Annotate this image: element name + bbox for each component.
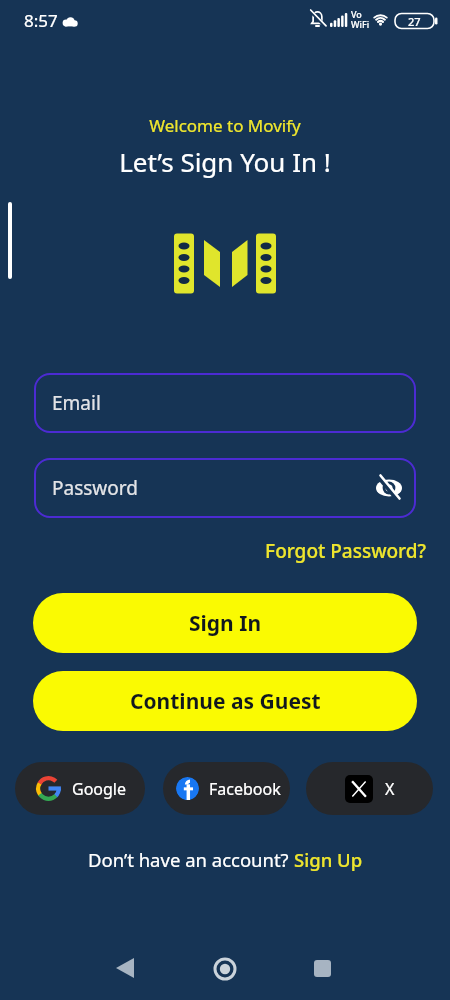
button[interactable]: Password <box>34 458 416 518</box>
button[interactable]: Sign In <box>33 593 417 653</box>
button[interactable]: Email <box>34 373 416 433</box>
button[interactable] <box>213 957 237 981</box>
button[interactable]: Google <box>15 762 145 815</box>
staticText: Password <box>52 475 138 501</box>
button[interactable]: Facebook <box>163 762 290 815</box>
button[interactable] <box>314 960 331 977</box>
staticText: Let’s Sign You In ! <box>0 144 450 179</box>
button[interactable]: Sign Up <box>294 847 363 872</box>
button[interactable] <box>116 958 134 978</box>
staticText: Welcome to Movify <box>0 114 450 137</box>
staticText: Continue as Guest <box>130 687 321 716</box>
button[interactable]: X <box>306 762 433 815</box>
staticText: Facebook <box>209 778 281 800</box>
staticText: X <box>385 778 395 800</box>
staticText: Don’t have an account? <box>88 847 294 872</box>
button[interactable]: Continue as Guest <box>33 671 417 731</box>
staticText: Email <box>52 390 101 416</box>
staticText: Vo WiFi <box>351 8 370 31</box>
button[interactable]: Forgot Password? <box>0 538 426 564</box>
staticText: 8:57 <box>24 9 58 32</box>
staticText: Google <box>72 778 127 800</box>
staticText: 27 <box>408 14 421 29</box>
staticText: Sign In <box>189 609 262 638</box>
